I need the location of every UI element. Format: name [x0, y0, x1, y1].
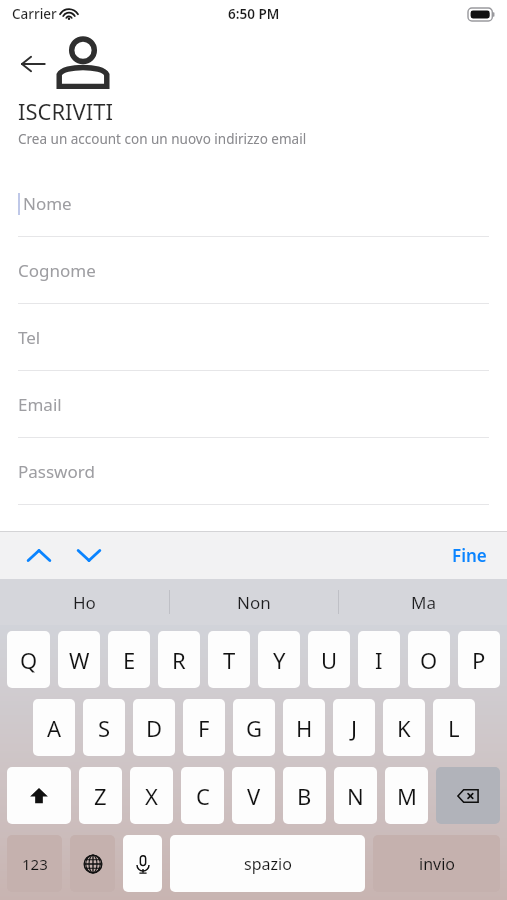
button[interactable]: 123: [7, 835, 62, 892]
staticText: A: [47, 713, 62, 743]
button[interactable]: Tel: [0, 304, 507, 371]
button[interactable]: X: [130, 767, 173, 824]
button[interactable]: K: [383, 699, 425, 756]
staticText: Fine: [452, 544, 487, 567]
button[interactable]: L: [433, 699, 475, 756]
staticText: Ma: [411, 591, 436, 614]
button[interactable]: O: [408, 631, 450, 688]
staticText: Q: [20, 645, 38, 675]
button[interactable]: W: [58, 631, 100, 688]
button[interactable]: Y: [258, 631, 300, 688]
staticText: X: [145, 781, 158, 811]
button[interactable]: R: [158, 631, 200, 688]
staticText: S: [98, 713, 111, 743]
staticText: Ho: [73, 591, 96, 614]
button[interactable]: Change keyboard: [70, 835, 115, 892]
button[interactable]: Backspace: [436, 767, 500, 824]
staticText: B: [297, 781, 312, 811]
button[interactable]: Password: [0, 438, 507, 505]
staticText: H: [296, 713, 313, 743]
button[interactable]: invio: [373, 835, 500, 892]
staticText: P: [472, 645, 486, 675]
staticText: W: [69, 645, 90, 675]
button[interactable]: H: [283, 699, 325, 756]
staticText: G: [246, 713, 263, 743]
button[interactable]: E: [108, 631, 150, 688]
button[interactable]: Nome: [0, 170, 507, 237]
button[interactable]: N: [334, 767, 377, 824]
button[interactable]: M: [385, 767, 428, 824]
staticText: Z: [94, 781, 107, 811]
staticText: C: [196, 781, 210, 811]
staticText: Nome: [23, 192, 72, 215]
button[interactable]: J: [333, 699, 375, 756]
staticText: J: [351, 713, 358, 743]
button[interactable]: Ma: [339, 579, 507, 625]
staticText: E: [123, 645, 136, 675]
staticText: K: [397, 713, 411, 743]
staticText: U: [321, 645, 338, 675]
button[interactable]: Dictation: [123, 835, 162, 892]
staticText: I: [375, 645, 383, 675]
button[interactable]: G: [233, 699, 275, 756]
staticText: O: [420, 645, 438, 675]
staticText: Email: [18, 393, 62, 416]
button[interactable]: D: [133, 699, 175, 756]
staticText: spazio: [244, 853, 292, 875]
staticText: Tel: [18, 326, 41, 349]
staticText: L: [448, 713, 460, 743]
staticText: M: [397, 781, 417, 811]
staticText: invio: [419, 853, 455, 875]
staticText: Carrier: [12, 5, 57, 23]
staticText: Y: [273, 645, 286, 675]
button[interactable]: spazio: [170, 835, 365, 892]
staticText: D: [146, 713, 163, 743]
staticText: N: [347, 781, 364, 811]
staticText: R: [172, 645, 186, 675]
button[interactable]: S: [83, 699, 125, 756]
staticText: 6:50 PM: [228, 5, 280, 23]
staticText: T: [223, 645, 236, 675]
staticText: Crea un account con un nuovo indirizzo e…: [18, 130, 307, 148]
staticText: Non: [237, 591, 271, 614]
button[interactable]: A: [33, 699, 75, 756]
button[interactable]: Non: [170, 579, 338, 625]
button[interactable]: C: [181, 767, 224, 824]
staticText: ISCRIVITI: [18, 96, 113, 126]
button[interactable]: B: [283, 767, 326, 824]
button[interactable]: I: [358, 631, 400, 688]
button[interactable]: P: [458, 631, 500, 688]
button[interactable]: V: [232, 767, 275, 824]
button[interactable]: Next field: [68, 535, 110, 575]
staticText: V: [247, 781, 261, 811]
button[interactable]: Back: [16, 47, 50, 81]
button[interactable]: T: [208, 631, 250, 688]
button[interactable]: F: [183, 699, 225, 756]
button[interactable]: Previous field: [18, 535, 60, 575]
button[interactable]: Shift: [7, 767, 71, 824]
button[interactable]: Ho: [0, 579, 169, 625]
staticText: Cognome: [18, 259, 96, 282]
staticText: 123: [22, 854, 48, 874]
button[interactable]: Cognome: [0, 237, 507, 304]
staticText: F: [198, 713, 210, 743]
button[interactable]: U: [308, 631, 350, 688]
button[interactable]: Email: [0, 371, 507, 438]
staticText: Password: [18, 460, 95, 483]
button[interactable]: Q: [7, 631, 50, 688]
button[interactable]: Z: [79, 767, 122, 824]
button[interactable]: Fine: [446, 538, 493, 573]
